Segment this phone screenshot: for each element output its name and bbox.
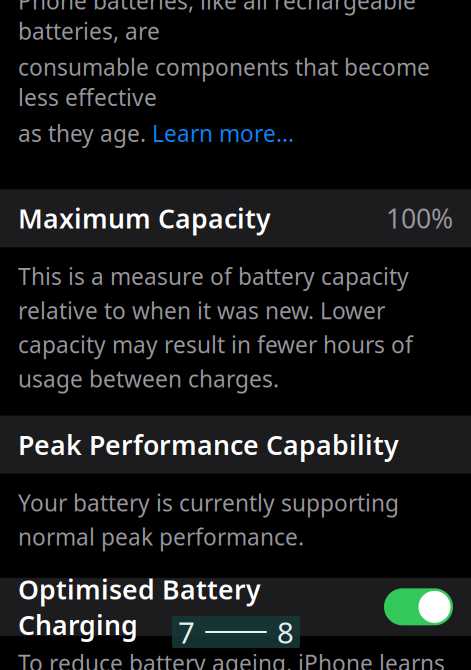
button[interactable]: Learn more... — [152, 118, 294, 148]
staticText: as they age. — [18, 118, 152, 148]
staticText: Phone batteries, like all rechargeable b… — [18, 0, 416, 46]
staticText: Optimised Battery Charging — [18, 571, 261, 642]
staticText: Peak Performance Capability — [18, 427, 399, 462]
staticText: Your battery is currently supporting nor… — [18, 488, 399, 552]
staticText: Learn more... — [152, 118, 294, 148]
staticText: 7 — [178, 612, 195, 651]
staticText: 8 — [277, 612, 294, 651]
staticText: To reduce battery ageing, iPhone learns … — [18, 648, 445, 670]
staticText: Maximum Capacity — [18, 200, 271, 236]
staticText: consumable components that become less e… — [18, 52, 430, 112]
staticText: This is a measure of battery capacity re… — [18, 261, 413, 394]
staticText: 100% — [386, 200, 453, 236]
button[interactable]: Optimised Battery Charging — [0, 578, 471, 636]
